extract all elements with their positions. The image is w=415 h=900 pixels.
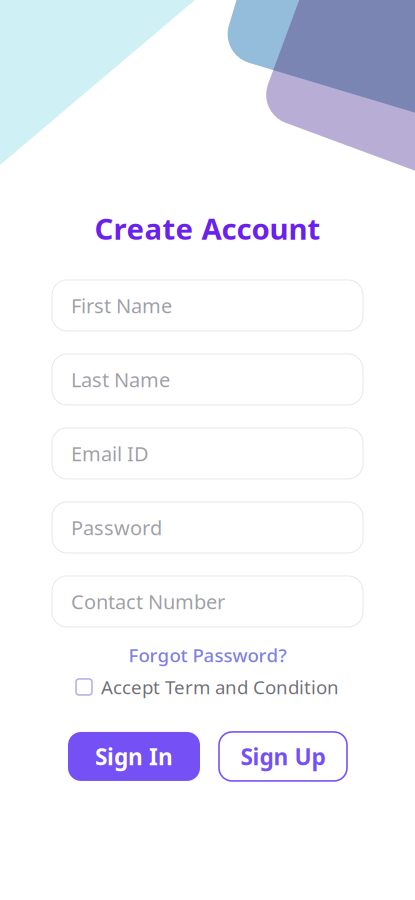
staticText: Email ID: [71, 440, 149, 467]
button[interactable]: Sign In: [68, 732, 200, 781]
button[interactable]: Sign Up: [219, 732, 347, 781]
button[interactable]: Contact Number: [52, 576, 363, 627]
button[interactable]: Forgot Password?: [128, 643, 286, 667]
button[interactable]: Password: [52, 502, 363, 553]
button[interactable]: First Name: [52, 280, 363, 331]
button[interactable]: Last Name: [52, 354, 363, 405]
staticText: Sign Up: [240, 741, 325, 771]
staticText: Last Name: [71, 366, 170, 393]
button[interactable]: Email ID: [52, 428, 363, 479]
staticText: First Name: [71, 292, 172, 319]
staticText: Accept Term and Condition: [101, 675, 339, 699]
staticText: Sign In: [95, 741, 173, 771]
staticText: Password: [71, 514, 162, 541]
staticText: Contact Number: [71, 588, 225, 615]
button[interactable]: Accept Term and Condition: [76, 675, 339, 699]
staticText: Create Account: [94, 209, 320, 248]
staticText: Forgot Password?: [128, 643, 286, 667]
